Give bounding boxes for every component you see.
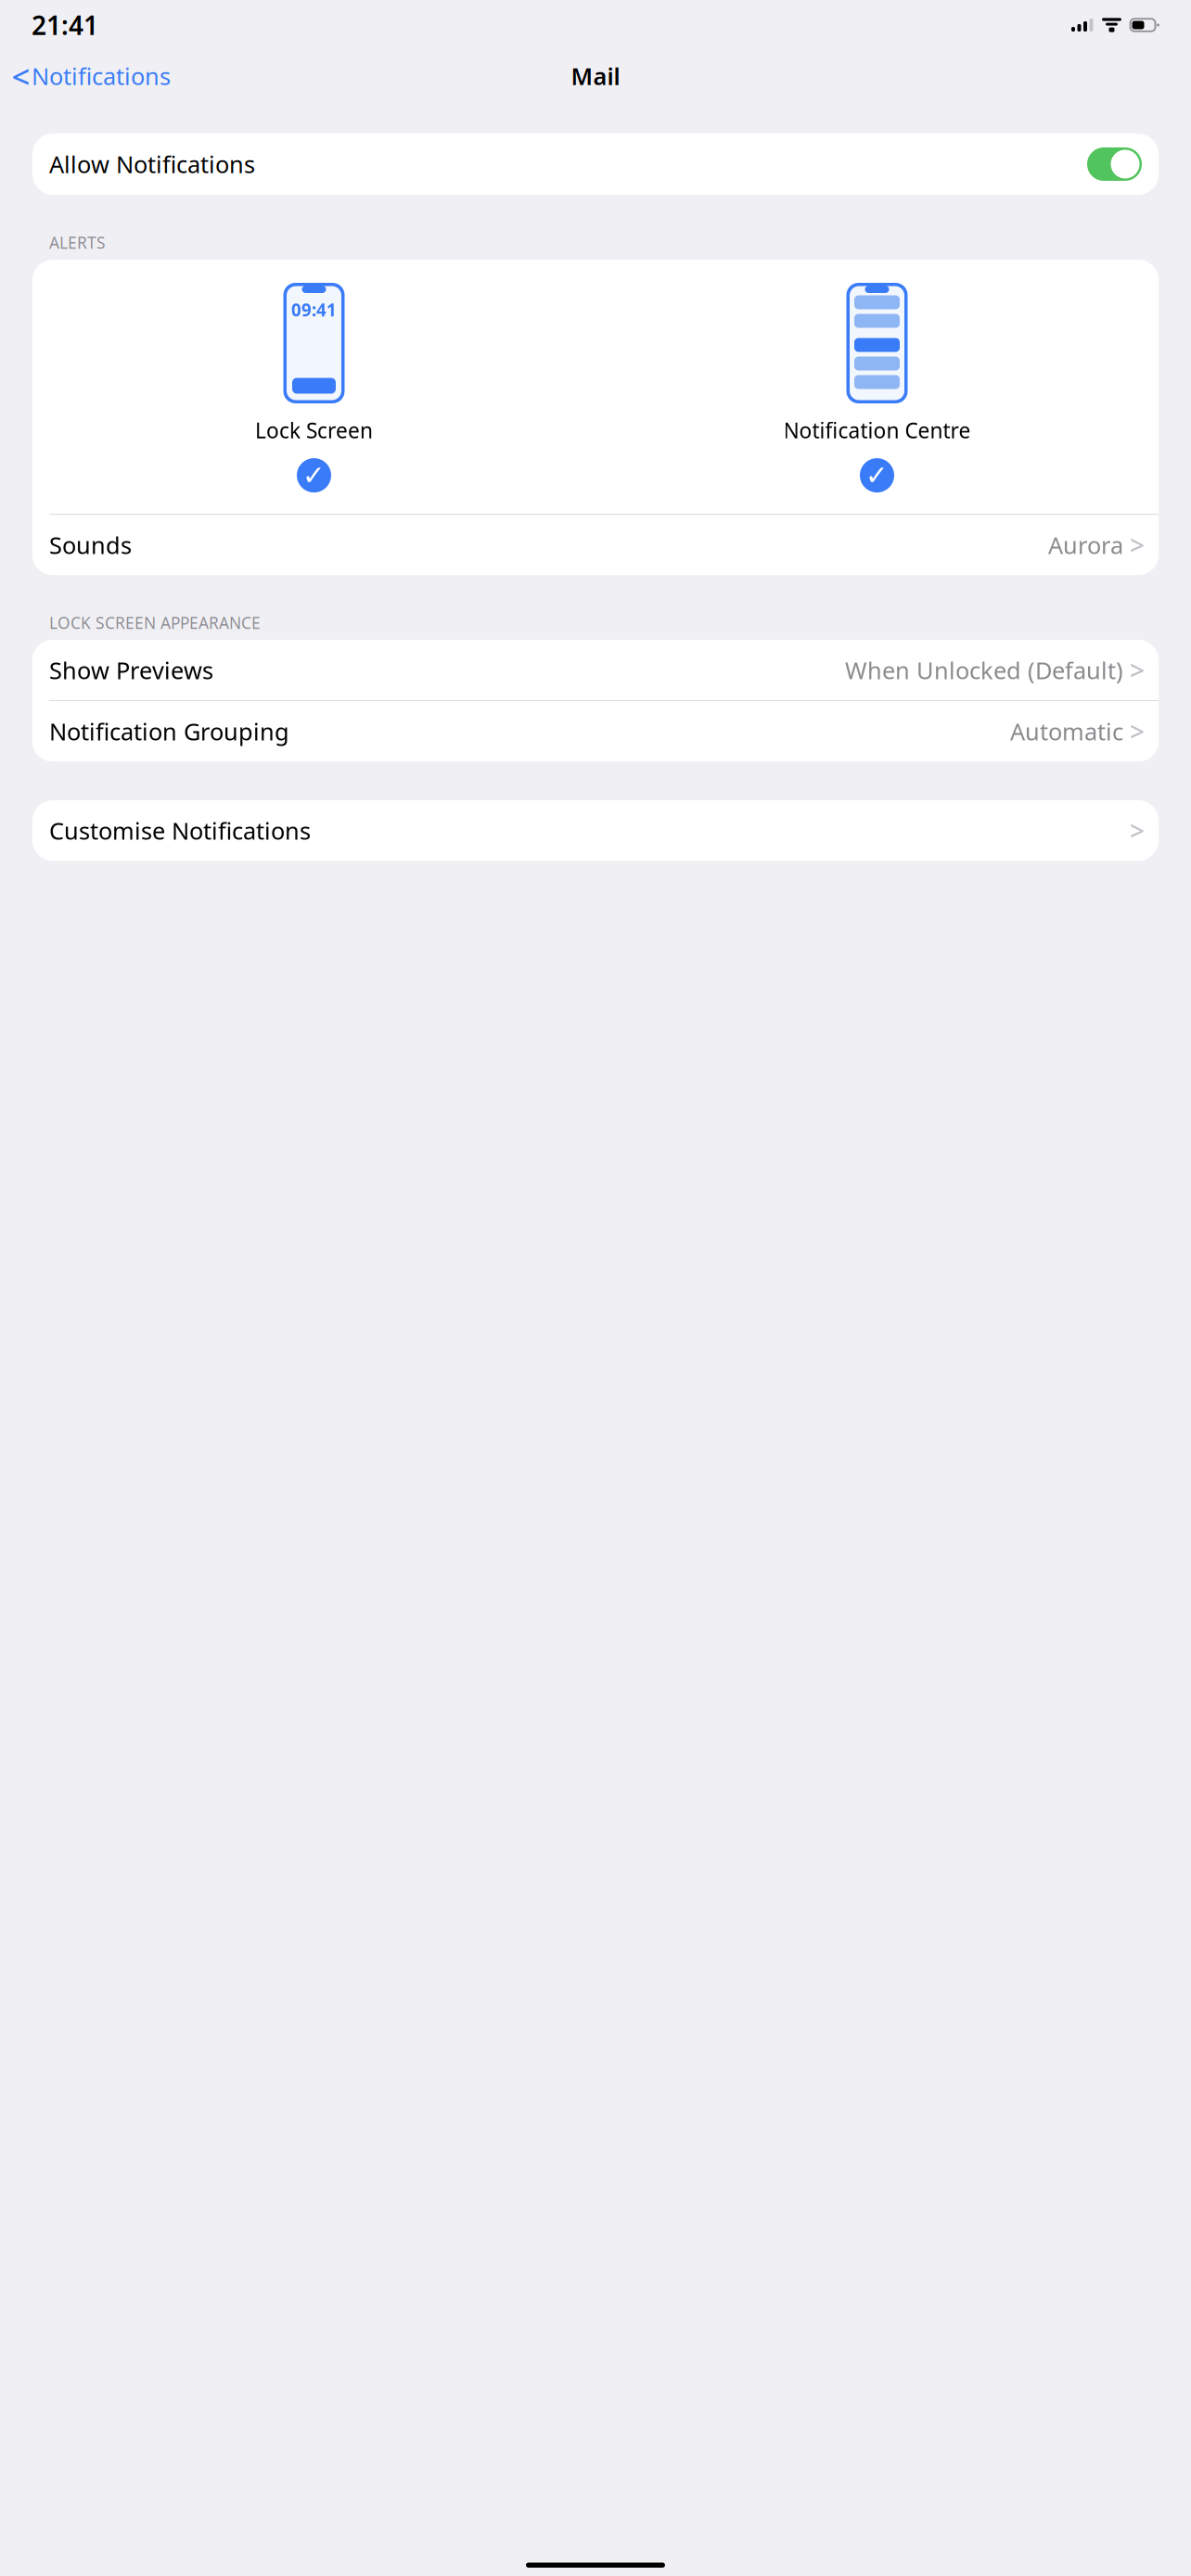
staticText: > <box>1130 813 1145 848</box>
staticText: Notifications <box>32 60 171 92</box>
staticText: 09:41 <box>291 298 337 321</box>
button[interactable]: Allow Notifications <box>1087 147 1142 181</box>
button[interactable]: Customise Notifications <box>32 800 1159 861</box>
button[interactable]: Sounds <box>32 515 1159 575</box>
staticText: ✓ <box>302 460 326 491</box>
staticText: > <box>1130 528 1145 562</box>
staticText: Notification Grouping <box>49 716 289 747</box>
staticText: ALERTS <box>49 232 106 253</box>
staticText: Show Previews <box>49 654 213 686</box>
staticText: When Unlocked (Default) <box>845 654 1123 686</box>
staticText: Sounds <box>49 529 132 560</box>
button[interactable]: Notification Grouping <box>32 701 1159 761</box>
button[interactable]: < <box>11 53 174 99</box>
button[interactable]: Allow Notifications <box>32 134 1159 195</box>
button[interactable]: 09:41 <box>255 283 373 492</box>
staticText: ✓ <box>865 460 889 491</box>
staticText: Customise Notifications <box>49 815 311 846</box>
staticText: Aurora <box>1048 529 1123 560</box>
staticText: Automatic <box>1010 716 1123 747</box>
button[interactable]: Show Previews <box>32 640 1159 700</box>
staticText: Mail <box>571 60 620 92</box>
staticText: 21:41 <box>32 8 98 42</box>
staticText: Notification Centre <box>783 416 971 444</box>
staticText: > <box>1130 714 1145 749</box>
staticText: LOCK SCREEN APPEARANCE <box>49 612 261 633</box>
staticText: > <box>1130 653 1145 687</box>
staticText: Allow Notifications <box>49 149 255 180</box>
button[interactable]: Notification Centre <box>783 283 971 492</box>
staticText: Lock Screen <box>255 416 373 444</box>
staticText: < <box>12 55 30 97</box>
